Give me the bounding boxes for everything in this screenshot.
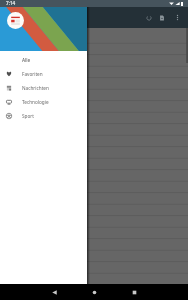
button[interactable]: Back — [46, 284, 62, 300]
button[interactable]: Refresh — [142, 11, 155, 24]
button[interactable]: Alle — [0, 53, 87, 67]
button[interactable]: Favoriten — [0, 67, 87, 81]
button[interactable]: Recents — [126, 284, 142, 300]
staticText: Favoriten — [22, 71, 43, 77]
staticText: Sport — [22, 113, 34, 119]
staticText: Alle — [22, 57, 31, 63]
button[interactable]: Home — [86, 284, 102, 300]
staticText: Nachrichten — [22, 85, 49, 91]
button[interactable]: Nachrichten — [0, 81, 87, 95]
button[interactable]: Sport — [0, 109, 87, 123]
staticText: 7:14 — [6, 0, 16, 6]
staticText: Technologie — [22, 99, 49, 105]
button[interactable]: Save article — [155, 11, 168, 24]
button[interactable]: Profile — [7, 12, 24, 29]
button[interactable]: More options — [171, 11, 184, 24]
button[interactable]: Technologie — [0, 95, 87, 109]
